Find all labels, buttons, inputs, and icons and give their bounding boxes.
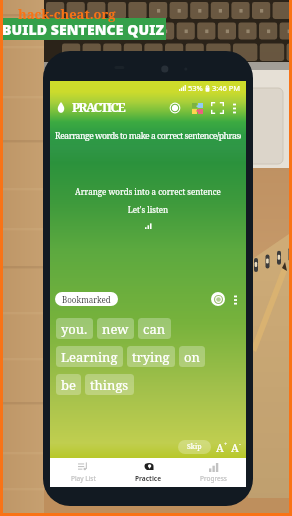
button[interactable]: Record xyxy=(167,100,183,116)
button[interactable]: you. xyxy=(56,318,93,339)
staticText: things xyxy=(90,376,129,394)
button[interactable]: Play List xyxy=(50,462,116,483)
staticText: Progress xyxy=(200,474,227,483)
staticText: PRACTICE xyxy=(72,99,125,116)
button[interactable]: Fullscreen xyxy=(210,101,224,115)
button[interactable]: be xyxy=(56,374,81,395)
staticText: hack-cheat.org xyxy=(18,5,116,23)
button[interactable]: trying xyxy=(127,346,175,367)
button[interactable]: Decrease text size xyxy=(231,440,241,455)
staticText: - xyxy=(239,440,241,448)
button[interactable]: Practice xyxy=(116,462,181,483)
staticText: Bookmarked xyxy=(62,294,111,305)
staticText: Learning xyxy=(61,348,118,366)
button[interactable]: things xyxy=(85,374,134,395)
staticText: you. xyxy=(61,320,88,338)
button[interactable]: Learning xyxy=(56,346,123,367)
staticText: Skip xyxy=(187,442,202,452)
staticText: 53% xyxy=(188,83,203,93)
staticText: A xyxy=(216,440,224,455)
button[interactable]: can xyxy=(138,318,171,339)
staticText: trying xyxy=(132,348,170,366)
staticText: on xyxy=(184,348,200,366)
staticText: A xyxy=(231,440,239,455)
staticText: Arrange words into a correct sentence xyxy=(50,186,246,197)
staticText: Play List xyxy=(71,474,96,483)
button[interactable]: Item menu xyxy=(230,294,240,304)
button[interactable]: Refresh xyxy=(211,292,225,306)
staticText: new xyxy=(102,320,129,338)
button[interactable]: Increase text size xyxy=(216,440,228,455)
staticText: + xyxy=(224,440,228,448)
button[interactable]: Bookmarked xyxy=(55,292,118,306)
button[interactable]: Puzzle mode xyxy=(191,102,203,114)
staticText: 3:46 PM xyxy=(212,83,241,93)
button[interactable]: on xyxy=(179,346,205,367)
button[interactable]: Progress xyxy=(181,462,246,483)
staticText: can xyxy=(143,320,166,338)
button[interactable]: More options xyxy=(228,102,240,114)
staticText: be xyxy=(61,376,76,394)
staticText: Let's listen xyxy=(50,204,246,215)
button[interactable]: Skip xyxy=(178,440,211,454)
staticText: BUILD SENTENCE QUIZ xyxy=(2,20,165,39)
staticText: Rearrange words to make a correct senten… xyxy=(55,130,241,142)
staticText: Practice xyxy=(135,474,162,483)
button[interactable]: new xyxy=(97,318,134,339)
